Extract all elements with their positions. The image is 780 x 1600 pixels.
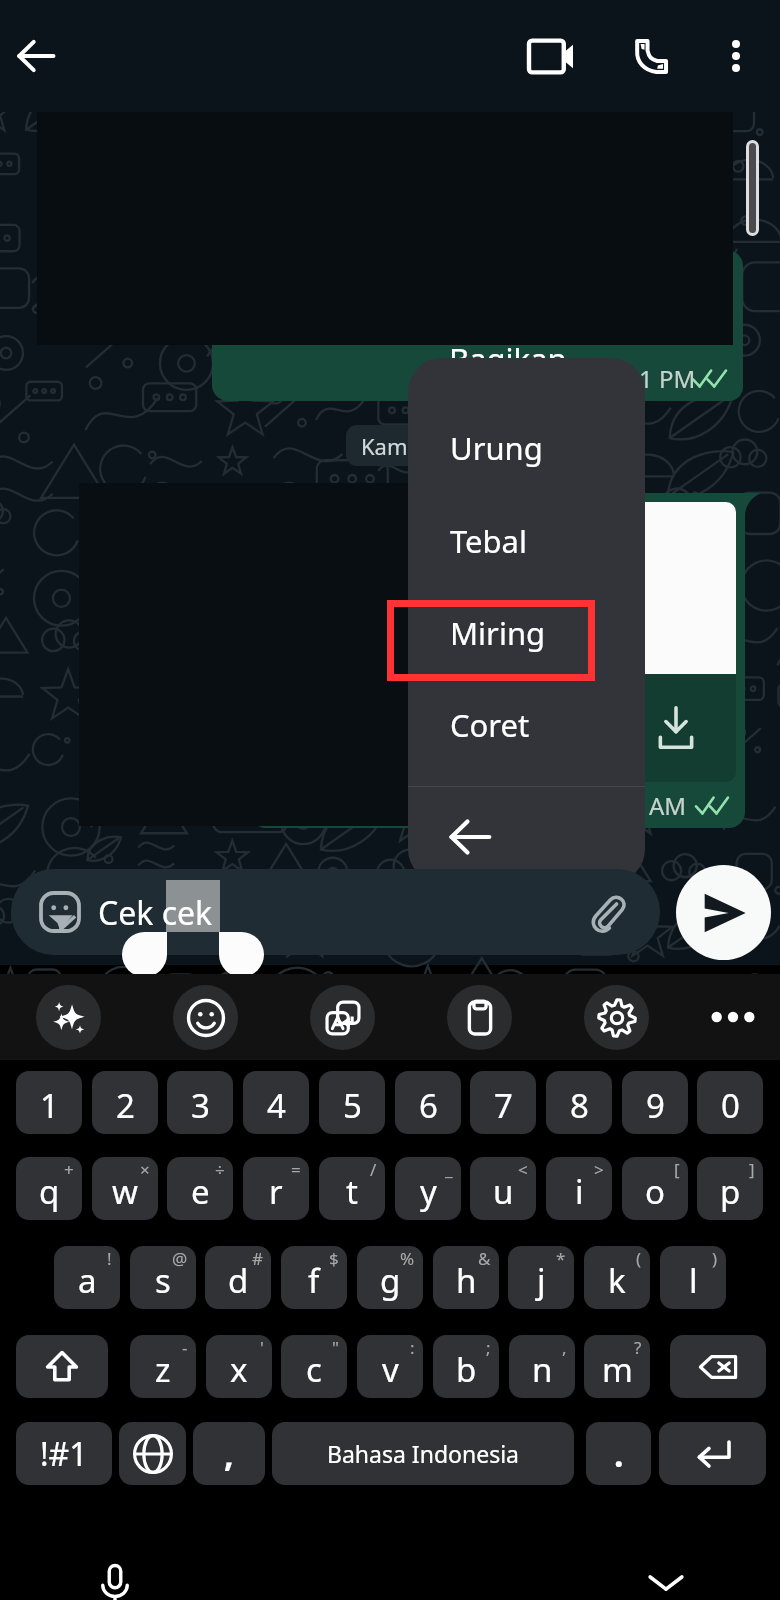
staticText: e xyxy=(191,1169,210,1214)
button[interactable]: Translate xyxy=(310,985,375,1050)
button[interactable]: a xyxy=(54,1246,120,1309)
button[interactable]: Language xyxy=(119,1422,186,1485)
staticText: # xyxy=(252,1247,263,1270)
staticText: @ xyxy=(172,1247,188,1270)
button[interactable]: Clipboard xyxy=(447,985,512,1050)
staticText: - xyxy=(182,1336,188,1359)
button[interactable]: Bahasa Indonesia xyxy=(272,1422,574,1485)
staticText: !#1 xyxy=(40,1432,88,1476)
button[interactable]: Hide keyboard xyxy=(641,1557,691,1600)
button[interactable]: o xyxy=(622,1157,688,1220)
staticText: Bahasa Indonesia xyxy=(327,1438,519,1469)
staticText: i xyxy=(575,1169,584,1214)
button[interactable]: v xyxy=(357,1335,423,1398)
button[interactable]: u xyxy=(470,1157,536,1220)
staticText: x xyxy=(230,1347,248,1392)
staticText: * xyxy=(556,1247,566,1270)
button[interactable]: z xyxy=(130,1335,196,1398)
button[interactable]: Settings xyxy=(584,985,649,1050)
button[interactable]: Magic compose xyxy=(36,985,101,1050)
button[interactable]: p xyxy=(697,1157,763,1220)
staticText: n xyxy=(532,1347,553,1392)
button[interactable]: Emoji xyxy=(173,985,238,1050)
button[interactable]: r xyxy=(243,1157,309,1220)
button[interactable]: s xyxy=(130,1246,196,1309)
button[interactable]: Miring xyxy=(408,584,645,681)
staticText: 1 xyxy=(40,1083,59,1128)
staticText: AM xyxy=(649,789,687,822)
staticText: j xyxy=(537,1258,546,1303)
staticText: q xyxy=(39,1169,60,1214)
staticText: 6 xyxy=(419,1083,438,1128)
button[interactable]: f xyxy=(281,1246,347,1309)
button[interactable]: Voice call xyxy=(619,25,681,87)
staticText: [ xyxy=(674,1158,680,1181)
button[interactable]: w xyxy=(92,1157,158,1220)
button[interactable]: t xyxy=(319,1157,385,1220)
staticText: Bagikan xyxy=(449,338,567,380)
button[interactable]: Shift xyxy=(16,1335,108,1398)
button[interactable]: g xyxy=(357,1246,423,1309)
button[interactable]: l xyxy=(660,1246,726,1309)
button[interactable]: Urung xyxy=(408,399,645,496)
button[interactable]: Voice input xyxy=(90,1557,140,1600)
button[interactable]: Enter xyxy=(659,1422,766,1485)
button[interactable]: d xyxy=(205,1246,271,1309)
button[interactable]: j xyxy=(508,1246,574,1309)
staticText: u xyxy=(493,1169,514,1214)
button[interactable]: !#1 xyxy=(16,1422,112,1485)
button[interactable]: 3 xyxy=(167,1071,233,1134)
button[interactable]: 6 xyxy=(395,1071,461,1134)
button[interactable]: e xyxy=(167,1157,233,1220)
button[interactable]: Send xyxy=(676,865,771,960)
staticText: < xyxy=(518,1158,528,1181)
staticText: 2 xyxy=(116,1083,135,1128)
button[interactable]: 0 xyxy=(697,1071,763,1134)
staticText: ! xyxy=(107,1247,112,1270)
staticText: , xyxy=(224,1431,234,1477)
button[interactable]: Coret xyxy=(408,676,645,773)
button[interactable]: 2 xyxy=(92,1071,158,1134)
staticText: " xyxy=(332,1336,339,1359)
button[interactable]: More options xyxy=(706,26,766,86)
staticText: . xyxy=(614,1431,624,1477)
button[interactable]: Backspace xyxy=(670,1335,766,1398)
staticText: 3 xyxy=(191,1083,210,1128)
button[interactable]: Back xyxy=(6,26,66,86)
staticText: d xyxy=(228,1258,249,1303)
button[interactable]: Tebal xyxy=(408,492,645,589)
staticText: $ xyxy=(329,1247,339,1270)
button[interactable]: i xyxy=(546,1157,612,1220)
button[interactable]: Back xyxy=(408,787,645,883)
button[interactable]: h xyxy=(433,1246,499,1309)
button[interactable]: 5 xyxy=(319,1071,385,1134)
staticText: Tebal xyxy=(450,520,528,562)
staticText: l xyxy=(689,1258,698,1303)
staticText: f xyxy=(308,1258,320,1303)
button[interactable]: k xyxy=(584,1246,650,1309)
button[interactable]: y xyxy=(395,1157,461,1220)
button[interactable]: , xyxy=(193,1422,265,1485)
staticText: k xyxy=(608,1258,626,1303)
button[interactable]: More xyxy=(701,985,765,1049)
staticText: 8 xyxy=(570,1083,589,1128)
button[interactable]: Sticker xyxy=(29,881,91,943)
button[interactable]: 8 xyxy=(546,1071,612,1134)
button[interactable]: 4 xyxy=(243,1071,309,1134)
button[interactable]: Video call xyxy=(520,25,582,87)
button[interactable]: 9 xyxy=(622,1071,688,1134)
button[interactable]: n xyxy=(509,1335,575,1398)
staticText: 0 xyxy=(721,1083,740,1128)
staticText: y xyxy=(420,1169,437,1214)
button[interactable]: b xyxy=(433,1335,499,1398)
button[interactable]: . xyxy=(586,1422,651,1485)
button[interactable]: c xyxy=(281,1335,347,1398)
staticText: p xyxy=(720,1169,741,1214)
button[interactable]: q xyxy=(16,1157,82,1220)
button[interactable]: 1 xyxy=(16,1071,82,1134)
button[interactable]: Attach xyxy=(578,883,636,941)
button[interactable]: 7 xyxy=(470,1071,536,1134)
staticText: t xyxy=(346,1169,358,1214)
button[interactable]: m xyxy=(584,1335,650,1398)
button[interactable]: x xyxy=(206,1335,272,1398)
